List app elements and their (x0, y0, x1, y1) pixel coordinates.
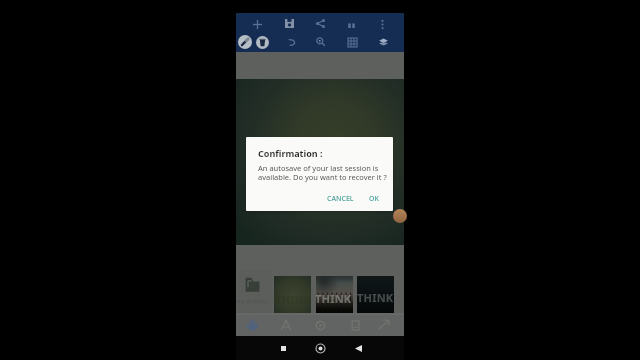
button[interactable]: CANCEL (321, 191, 360, 207)
button[interactable]: Add (247, 14, 267, 34)
button[interactable]: Layers (344, 314, 366, 336)
staticText: THINK (316, 291, 352, 306)
button[interactable]: Grid (342, 32, 362, 52)
button[interactable]: Text (275, 314, 297, 336)
button[interactable]: Share (310, 13, 330, 33)
button[interactable]: Recents (273, 338, 293, 358)
button[interactable]: Project sketch (274, 276, 311, 313)
staticText: OK (369, 194, 379, 204)
staticText: THINK (275, 292, 311, 307)
button[interactable]: Undo (282, 33, 302, 53)
button[interactable]: Zoom (310, 31, 330, 51)
button[interactable]: Save (279, 13, 299, 33)
button[interactable]: Erase (252, 32, 272, 52)
button[interactable]: Brush (241, 314, 263, 336)
button[interactable]: Layers (373, 31, 393, 51)
button[interactable]: Project thin (357, 276, 394, 313)
button[interactable]: More options (372, 14, 392, 34)
button[interactable]: Back (348, 338, 368, 358)
button[interactable]: OK (363, 191, 385, 207)
button[interactable]: Home (310, 338, 330, 358)
staticText: THINK (357, 290, 394, 305)
button[interactable]: Draw (235, 32, 255, 52)
button[interactable]: My projects (237, 270, 272, 314)
staticText: An autosave of your last session is avai… (258, 163, 393, 182)
button[interactable]: Project forest (316, 276, 353, 313)
button[interactable]: Shapes (309, 314, 331, 336)
button[interactable]: Transform (373, 314, 395, 336)
staticText: CANCEL (327, 194, 354, 204)
button[interactable]: Add text (341, 14, 361, 34)
button[interactable]: Brush colour (393, 209, 407, 223)
staticText: Confirmation : (258, 147, 323, 159)
